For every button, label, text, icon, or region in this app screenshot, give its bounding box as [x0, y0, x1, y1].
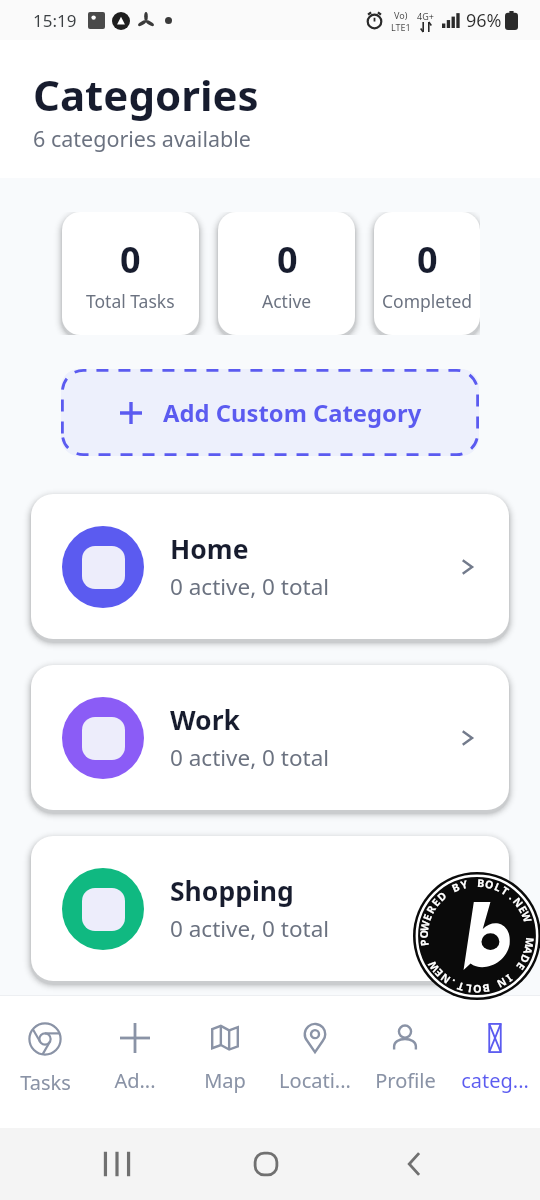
staticText: Work	[170, 702, 240, 738]
button[interactable]: Profile	[360, 1022, 450, 1094]
staticText: 0	[120, 235, 141, 284]
staticText: Locati...	[279, 1067, 351, 1094]
staticText: Add Custom Category	[163, 397, 422, 429]
staticText: Map	[204, 1067, 246, 1094]
staticText: Home	[170, 531, 249, 567]
staticText: 15:19	[33, 9, 77, 32]
staticText: Completed	[382, 289, 473, 313]
staticText: Shopping	[170, 873, 294, 909]
button[interactable]: Shopping	[31, 836, 509, 981]
staticText: 4G+	[417, 10, 434, 22]
staticText: LTE1	[391, 21, 411, 33]
staticText: Categories	[33, 66, 259, 123]
staticText: 6 categories available	[33, 124, 251, 153]
staticText: Ad...	[114, 1067, 156, 1094]
button[interactable]: 0	[218, 212, 355, 335]
staticText: 0 active, 0 total	[170, 571, 330, 602]
button[interactable]: Add Custom Category	[61, 369, 479, 456]
staticText: Tasks	[20, 1069, 71, 1096]
button[interactable]: Home	[31, 494, 509, 639]
staticText: 96%	[466, 8, 502, 33]
button[interactable]: 0	[62, 212, 199, 335]
staticText: categ...	[461, 1067, 529, 1094]
staticText: Total Tasks	[86, 289, 175, 313]
button[interactable]: Work	[31, 665, 509, 810]
button[interactable]: Ad...	[90, 1022, 180, 1094]
button[interactable]: 0	[374, 212, 480, 335]
button[interactable]: Powered by Bolt.new	[413, 872, 540, 1000]
staticText: 0	[277, 235, 298, 284]
button[interactable]: Locati...	[270, 1022, 360, 1094]
button[interactable]: Home	[249, 1147, 283, 1181]
button[interactable]: Tasks	[0, 1022, 90, 1096]
staticText: 0	[417, 235, 438, 284]
staticText: 0 active, 0 total	[170, 913, 330, 944]
staticText: Vo)	[394, 9, 408, 21]
staticText: Active	[262, 289, 312, 313]
staticText: 0 active, 0 total	[170, 742, 330, 773]
staticText: Profile	[375, 1067, 436, 1094]
button[interactable]: Recent apps	[100, 1147, 134, 1181]
button[interactable]: Back	[398, 1147, 432, 1181]
button[interactable]: Map	[180, 1022, 270, 1094]
button[interactable]: categ...	[450, 1022, 540, 1094]
